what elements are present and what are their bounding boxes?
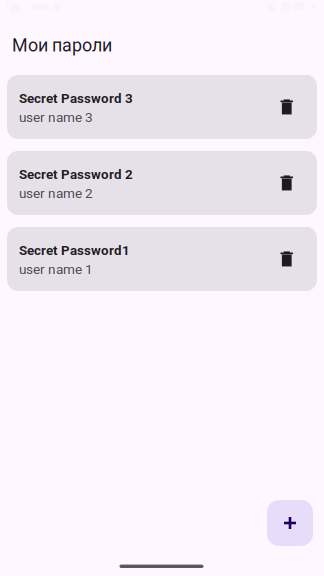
staticText: user name 3	[19, 109, 93, 125]
staticText: user name 1	[19, 261, 93, 277]
button[interactable]: Add password	[267, 500, 313, 546]
staticText: Secret Password1	[19, 243, 130, 258]
button[interactable]: Delete Secret Password1	[270, 239, 317, 278]
button[interactable]: Secret Password 2	[7, 151, 317, 215]
button[interactable]: Delete Secret Password 2	[270, 163, 317, 202]
button[interactable]: Secret Password 3	[7, 75, 317, 139]
button[interactable]: Secret Password1	[7, 227, 317, 291]
button[interactable]: Delete Secret Password 3	[270, 87, 317, 126]
staticText: Secret Password 2	[19, 167, 133, 182]
staticText: Мои пароли	[12, 35, 112, 56]
staticText: user name 2	[19, 185, 93, 201]
staticText: Secret Password 3	[19, 91, 133, 106]
